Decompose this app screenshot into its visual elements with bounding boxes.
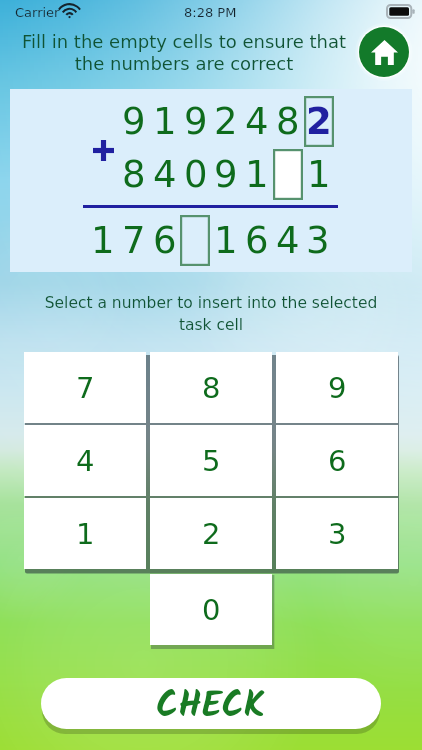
staticText: 4 <box>245 100 269 143</box>
staticText: 6 <box>328 444 347 478</box>
staticText: 2 <box>214 100 238 143</box>
staticText: 8 <box>122 153 146 196</box>
button[interactable]: CHECK <box>41 678 381 729</box>
button[interactable]: 9 <box>276 352 398 423</box>
staticText: 2 <box>202 517 221 551</box>
staticText: 1 <box>91 219 115 262</box>
staticText: 6 <box>153 219 177 262</box>
button[interactable]: 2 <box>150 498 272 569</box>
button[interactable]: 5 <box>150 425 272 496</box>
staticText: Select a number to insert into the selec… <box>40 294 382 333</box>
staticText: 4 <box>76 444 95 478</box>
staticText: Carrier <box>15 5 60 20</box>
staticText: 1 <box>307 153 331 196</box>
button[interactable]: 8 <box>150 352 272 423</box>
button[interactable]: 4 <box>24 425 146 496</box>
staticText: 6 <box>245 219 269 262</box>
staticText: 3 <box>328 517 347 551</box>
staticText: 0 <box>202 593 221 627</box>
staticText: 8 <box>202 371 221 405</box>
staticText: 9 <box>122 100 146 143</box>
staticText: 4 <box>276 219 300 262</box>
button[interactable]: Home <box>359 27 409 77</box>
button[interactable]: 0 <box>150 574 272 645</box>
button[interactable]: 3 <box>276 498 398 569</box>
staticText: 1 <box>153 100 177 143</box>
staticText: 9 <box>328 371 347 405</box>
button[interactable]: 7 <box>24 352 146 423</box>
button[interactable]: 1 <box>24 498 146 569</box>
staticText: Fill in the empty cells to ensure that t… <box>19 31 349 74</box>
staticText: 9 <box>214 153 238 196</box>
staticText: CHECK <box>156 678 266 729</box>
staticText: 4 <box>153 153 177 196</box>
staticText: 8 <box>276 100 300 143</box>
button[interactable]: 2 <box>304 96 334 147</box>
button[interactable] <box>180 215 210 266</box>
staticText: 0 <box>184 153 208 196</box>
staticText: 1 <box>214 219 238 262</box>
staticText: 7 <box>76 371 95 405</box>
staticText: 2 <box>306 100 332 143</box>
staticText: 1 <box>76 517 95 551</box>
staticText: 9 <box>184 100 208 143</box>
staticText: 8:28 PM <box>184 5 237 20</box>
button[interactable]: 6 <box>276 425 398 496</box>
staticText: 5 <box>202 444 221 478</box>
button[interactable] <box>273 149 303 200</box>
staticText: 3 <box>306 219 330 262</box>
staticText: 7 <box>122 219 146 262</box>
staticText: 1 <box>245 153 269 196</box>
